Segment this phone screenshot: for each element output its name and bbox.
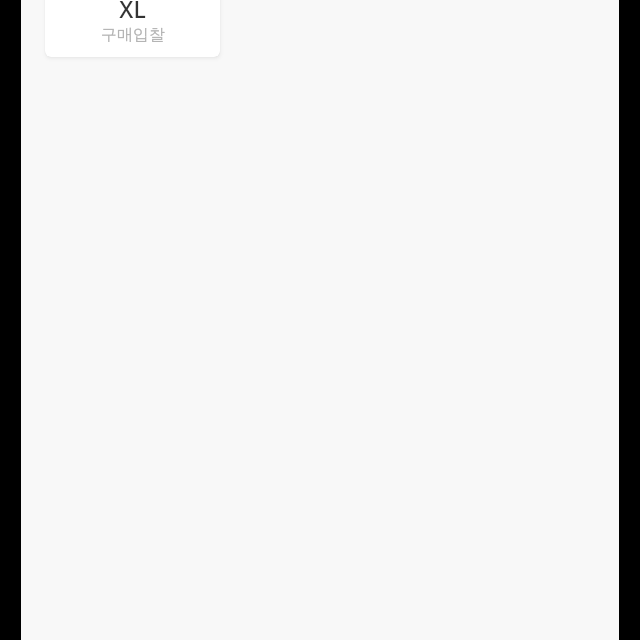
button[interactable]: XL: [45, 0, 220, 57]
staticText: XL: [119, 0, 146, 24]
staticText: 구매입찰: [101, 25, 165, 45]
